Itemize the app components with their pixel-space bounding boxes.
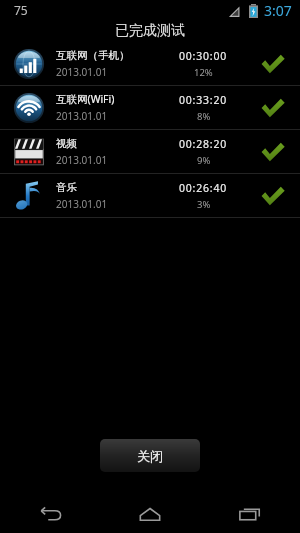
staticText: 视频 [56,137,77,150]
staticText: 9% [197,154,211,167]
other: Completed [256,179,290,213]
staticText: 12% [194,66,213,79]
staticText: 互联网（手机） [56,49,130,62]
button[interactable]: Recent apps [200,495,300,533]
staticText: 2013.01.01 [56,65,108,79]
staticText: 3% [197,198,211,211]
button[interactable]: 互联网（手机） [0,42,300,85]
other: Completed [256,135,290,169]
button[interactable]: 视频 [0,130,300,173]
staticText: 00:30:00 [179,49,228,63]
staticText: 已完成测试 [115,22,185,40]
staticText: 00:26:40 [179,181,228,195]
button[interactable]: Back [0,495,100,533]
staticText: 8% [197,110,211,123]
staticText: 00:33:20 [179,93,228,107]
button[interactable]: 互联网(WiFi) [0,86,300,129]
staticText: 2013.01.01 [56,153,108,167]
button[interactable]: 音乐 [0,174,300,217]
button[interactable]: Home [100,495,200,533]
staticText: 互联网(WiFi) [56,92,115,106]
staticText: 2013.01.01 [56,197,108,211]
staticText: 75 [14,2,28,18]
staticText: 关闭 [137,448,163,464]
other: Completed [256,47,290,81]
button[interactable]: 关闭 [100,439,200,472]
staticText: 3:07 [264,1,292,20]
staticText: 00:28:20 [179,137,228,151]
staticText: 2013.01.01 [56,109,108,123]
other: Completed [256,91,290,125]
staticText: 音乐 [56,181,77,194]
